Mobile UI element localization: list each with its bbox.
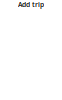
staticText: Add trip: [18, 0, 44, 9]
